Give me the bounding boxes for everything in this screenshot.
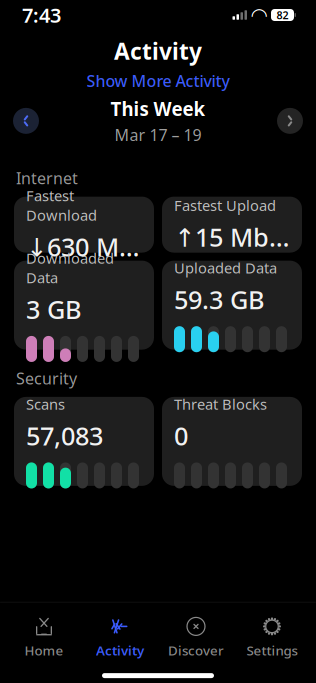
staticText: Show More Activity (86, 70, 229, 91)
button[interactable]: Uploaded Data (162, 261, 302, 350)
button[interactable]: Downloaded Data (14, 261, 154, 350)
staticText: ◠ (251, 4, 266, 26)
staticText: Security (16, 368, 77, 389)
staticText: ↓630 Mbps (26, 230, 142, 263)
staticText: Settings (246, 641, 297, 659)
staticText: Uploaded Data (174, 258, 277, 278)
staticText: Fastest Download (26, 186, 97, 225)
staticText: This Week (110, 96, 205, 121)
button[interactable]: Threat Blocks (162, 397, 302, 486)
button[interactable]: Discover (158, 610, 234, 665)
staticText: Activity (96, 641, 144, 659)
button[interactable]: Fastest Upload (162, 197, 302, 253)
staticText: 57,083 (26, 419, 103, 452)
button[interactable]: Home (6, 610, 82, 665)
button[interactable]: Next week (273, 104, 307, 138)
staticText: ↑15 Mbps (174, 220, 290, 254)
staticText: Threat Blocks (174, 394, 267, 414)
staticText: Scans (26, 394, 65, 414)
button[interactable]: Show More Activity (86, 66, 229, 91)
staticText: 82 (276, 8, 288, 22)
staticText: Activity (114, 36, 202, 66)
button[interactable]: Scans (14, 397, 154, 486)
staticText: 3 GB (26, 292, 82, 326)
staticText: Internet (16, 167, 78, 189)
staticText: Downloaded Data (26, 248, 114, 287)
staticText: Discover (168, 641, 224, 659)
staticText: 0 (174, 419, 188, 452)
staticText: 7:43 (22, 2, 61, 28)
staticText: Mar 17 – 19 (114, 124, 201, 145)
staticText: 59.3 GB (174, 283, 265, 316)
staticText: Fastest Upload (174, 196, 276, 215)
button[interactable]: Previous week (9, 104, 43, 138)
button[interactable]: Fastest Download (14, 197, 154, 253)
button[interactable]: Activity (82, 610, 158, 665)
staticText: Home (24, 641, 63, 659)
button[interactable]: Settings (234, 610, 310, 665)
